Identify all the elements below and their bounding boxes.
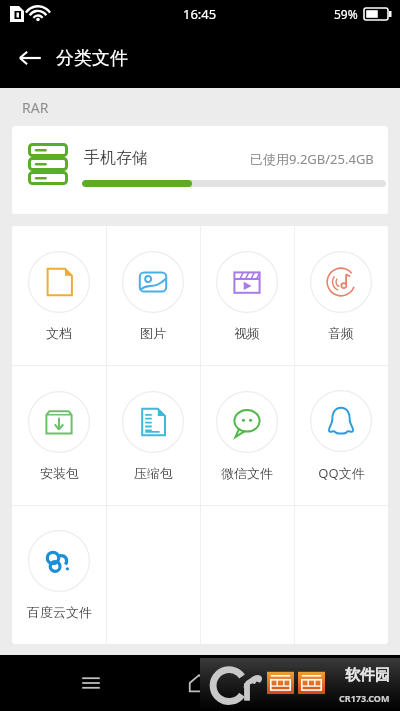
button[interactable]: 音频 — [294, 226, 388, 365]
staticText: RAR — [22, 98, 49, 117]
staticText: QQ文件 — [318, 464, 365, 482]
button[interactable]: 图片 — [106, 226, 200, 365]
staticText: 音频 — [328, 325, 354, 341]
button[interactable]: 文档 — [12, 226, 106, 365]
staticText: 手机存储 — [84, 148, 148, 168]
staticText: 59% — [334, 6, 358, 22]
button[interactable]: Home — [176, 660, 222, 706]
staticText: 分类文件 — [56, 47, 128, 70]
button[interactable]: Menu — [68, 660, 114, 706]
button[interactable]: 百度云文件 — [12, 506, 106, 644]
button[interactable]: Back — [8, 36, 52, 80]
staticText: 百度云文件 — [27, 604, 92, 620]
button[interactable]: 手机存储 — [12, 126, 388, 214]
button[interactable]: 安装包 — [12, 366, 106, 505]
button[interactable]: 视频 — [200, 226, 294, 365]
staticText: 图片 — [140, 325, 166, 341]
button[interactable]: 微信文件 — [200, 366, 294, 505]
button[interactable]: QQ文件 — [294, 366, 388, 505]
staticText: 压缩包 — [134, 465, 173, 481]
staticText: 16:45 — [183, 5, 217, 23]
staticText: CR173.COM — [339, 692, 390, 704]
staticText: 软件园 — [345, 666, 390, 685]
staticText: 安装包 — [40, 465, 79, 481]
staticText: 已使用9.2GB/25.4GB — [250, 150, 374, 168]
staticText: 文档 — [46, 325, 72, 341]
staticText: 视频 — [234, 325, 260, 341]
button[interactable]: 压缩包 — [106, 366, 200, 505]
staticText: 微信文件 — [221, 465, 273, 481]
